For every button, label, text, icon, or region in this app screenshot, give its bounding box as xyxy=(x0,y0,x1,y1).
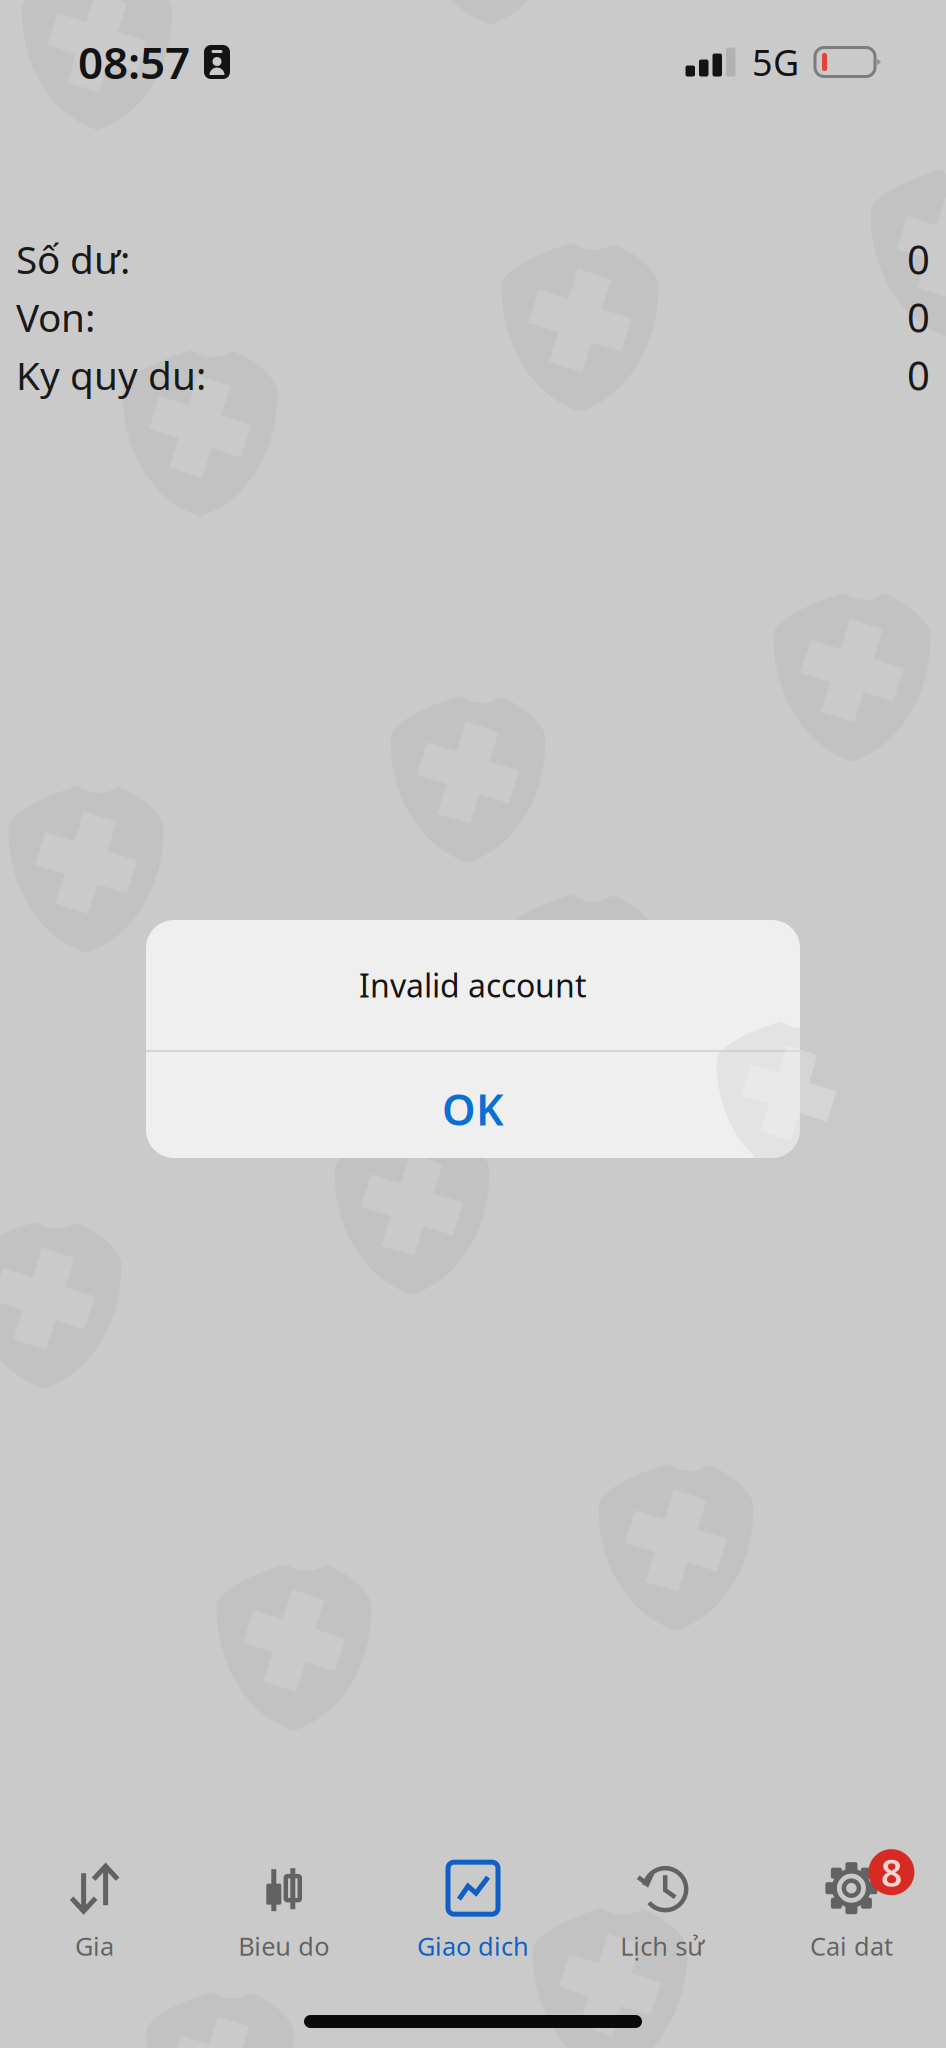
staticText: Cai dat xyxy=(810,1929,893,1963)
staticText: 08:57 xyxy=(78,33,190,91)
staticText: 0 xyxy=(907,290,930,343)
staticText: Ky quy du: xyxy=(16,349,206,401)
staticText: 0 xyxy=(907,348,930,401)
staticText: Giao dich xyxy=(417,1929,529,1963)
staticText: Số dư: xyxy=(16,233,130,285)
staticText: 8 xyxy=(881,1847,902,1897)
staticText: Von: xyxy=(16,291,95,343)
button[interactable]: 8 xyxy=(757,1848,946,1960)
staticText: Invalid account xyxy=(359,964,587,1006)
staticText: Lịch sử xyxy=(620,1929,704,1963)
staticText: Bieu do xyxy=(238,1929,329,1963)
staticText: 5G xyxy=(752,38,799,86)
staticText: OK xyxy=(442,1081,504,1137)
button[interactable]: Gia xyxy=(0,1848,189,1960)
button[interactable]: Giao dich xyxy=(378,1848,568,1960)
button[interactable]: Lịch sử xyxy=(568,1848,757,1960)
button[interactable]: OK xyxy=(146,1052,800,1158)
button[interactable]: Bieu do xyxy=(189,1848,378,1960)
staticText: 0 xyxy=(907,232,930,285)
staticText: Gia xyxy=(75,1929,114,1963)
